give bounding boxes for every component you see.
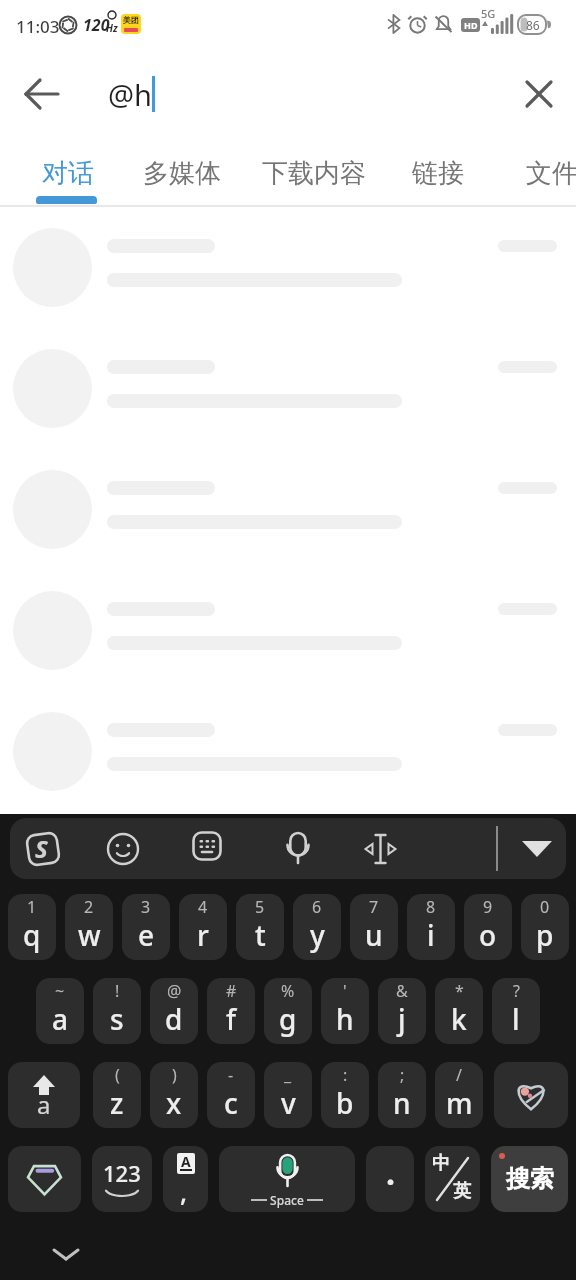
staticText: 120 — [83, 14, 110, 36]
button[interactable]: 9 — [464, 894, 512, 960]
staticText: ; — [400, 1064, 405, 1086]
button[interactable]: 2 — [65, 894, 113, 960]
button[interactable]: 6 — [293, 894, 341, 960]
button[interactable]: A — [163, 1146, 208, 1212]
button[interactable] — [48, 1242, 84, 1266]
button[interactable]: # — [207, 978, 255, 1044]
button[interactable] — [8, 1146, 81, 1212]
button[interactable]: . — [366, 1146, 414, 1212]
staticText: @h — [108, 75, 152, 114]
button[interactable]: 多媒体 — [134, 147, 230, 199]
button[interactable]: 5 — [236, 894, 284, 960]
staticText: # — [226, 980, 237, 1002]
button[interactable] — [192, 831, 222, 861]
button[interactable] — [364, 833, 397, 865]
button[interactable] — [0, 449, 576, 570]
button[interactable] — [524, 79, 554, 109]
staticText: k — [451, 1000, 467, 1038]
button[interactable]: ; — [378, 1062, 426, 1128]
button[interactable]: 4 — [179, 894, 227, 960]
button[interactable] — [286, 831, 310, 865]
button[interactable]: ( — [93, 1062, 141, 1128]
staticText: u — [365, 916, 383, 954]
button[interactable]: 0 — [521, 894, 569, 960]
staticText: ) — [172, 1064, 177, 1086]
button[interactable]: 7 — [350, 894, 398, 960]
button[interactable]: % — [264, 978, 312, 1044]
staticText: 0 — [540, 896, 550, 918]
staticText: 多媒体 — [143, 157, 221, 190]
staticText: , — [180, 1174, 188, 1209]
button[interactable] — [0, 570, 576, 691]
button[interactable]: * — [435, 978, 483, 1044]
button[interactable]: 1 — [8, 894, 56, 960]
staticText: - — [228, 1064, 234, 1086]
button[interactable]: 对话 — [28, 147, 108, 199]
button[interactable]: 8 — [407, 894, 455, 960]
staticText: 5 — [255, 896, 265, 918]
button[interactable] — [0, 207, 576, 328]
staticText: 3 — [141, 896, 151, 918]
staticText: . — [386, 1151, 395, 1195]
button[interactable]: & — [378, 978, 426, 1044]
staticText: HD — [464, 19, 478, 31]
button[interactable]: 中 — [425, 1146, 480, 1212]
button[interactable]: 123 — [92, 1146, 152, 1212]
button[interactable]: - — [207, 1062, 255, 1128]
staticText: A — [181, 1152, 191, 1171]
button[interactable]: _ — [264, 1062, 312, 1128]
button[interactable] — [106, 832, 140, 866]
button[interactable]: 下载内容 — [254, 147, 374, 199]
staticText: _ — [284, 1064, 292, 1086]
staticText: ~ — [55, 980, 65, 1002]
staticText: 9 — [483, 896, 493, 918]
button[interactable]: a — [8, 1062, 80, 1128]
button[interactable] — [24, 76, 60, 112]
button[interactable]: 3 — [122, 894, 170, 960]
staticText: l — [512, 1000, 520, 1038]
staticText: y — [310, 916, 325, 954]
button[interactable]: ? — [492, 978, 540, 1044]
staticText: s — [110, 1000, 124, 1038]
staticText: 中 — [432, 1152, 450, 1175]
staticText: 搜索 — [506, 1164, 554, 1194]
staticText: 11:03 — [16, 15, 60, 38]
staticText: j — [398, 1000, 406, 1038]
staticText: ( — [115, 1064, 120, 1086]
button[interactable] — [520, 838, 554, 860]
button[interactable]: ! — [93, 978, 141, 1044]
staticText: / — [456, 1064, 462, 1086]
button[interactable]: ' — [321, 978, 369, 1044]
button[interactable]: 搜索 — [491, 1146, 568, 1212]
staticText: i — [427, 916, 435, 954]
staticText: 下载内容 — [262, 157, 366, 190]
staticText: a — [37, 1088, 51, 1121]
button[interactable] — [0, 691, 576, 812]
staticText: r — [197, 916, 209, 954]
staticText: b — [336, 1084, 354, 1122]
staticText: 123 — [103, 1158, 141, 1188]
button[interactable]: : — [321, 1062, 369, 1128]
staticText: Hz — [106, 21, 118, 35]
button[interactable] — [494, 1062, 568, 1128]
button[interactable]: Space — [219, 1146, 355, 1212]
staticText: S — [35, 832, 48, 865]
button[interactable] — [24, 830, 62, 868]
button[interactable]: / — [435, 1062, 483, 1128]
staticText: p — [536, 916, 554, 954]
button[interactable] — [0, 328, 576, 449]
staticText: 6 — [312, 896, 322, 918]
staticText: d — [165, 1000, 183, 1038]
staticText: 7 — [369, 896, 379, 918]
staticText: m — [446, 1084, 473, 1122]
staticText: c — [224, 1084, 238, 1122]
staticText: 86 — [526, 17, 540, 33]
staticText: f — [226, 1000, 236, 1038]
staticText: 5G — [481, 6, 496, 21]
button[interactable]: 文件 — [512, 147, 576, 199]
staticText: 1 — [27, 896, 37, 918]
button[interactable]: @ — [150, 978, 198, 1044]
button[interactable]: 链接 — [402, 147, 474, 199]
button[interactable]: ~ — [36, 978, 84, 1044]
button[interactable]: ) — [150, 1062, 198, 1128]
